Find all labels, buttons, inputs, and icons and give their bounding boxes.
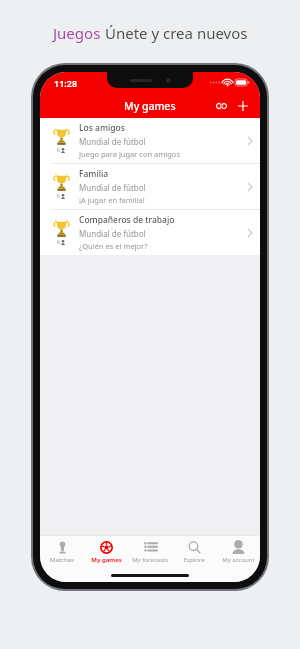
staticText: Mundial de fútbol bbox=[79, 136, 146, 147]
staticText: 11:28 bbox=[54, 77, 78, 89]
staticText: My games bbox=[124, 99, 176, 113]
button[interactable]: My games bbox=[84, 536, 128, 569]
staticText: 6 bbox=[57, 193, 60, 200]
staticText: Matches bbox=[50, 556, 74, 564]
button[interactable]: 6 bbox=[40, 210, 260, 255]
staticText: Familia bbox=[79, 168, 109, 180]
button[interactable]: 6 bbox=[40, 118, 260, 164]
staticText: Explore bbox=[183, 556, 205, 564]
staticText: 6 bbox=[57, 147, 60, 154]
staticText: 6 bbox=[57, 239, 60, 246]
staticText: My forecasts bbox=[132, 556, 168, 564]
staticText: My account bbox=[222, 556, 255, 564]
button[interactable]: My forecasts bbox=[128, 536, 172, 569]
button[interactable]: My account bbox=[216, 536, 260, 569]
button[interactable]: Explore bbox=[172, 536, 216, 569]
staticText: Compañeros de trabajo bbox=[79, 214, 175, 226]
staticText: ¡A jugar en familia! bbox=[79, 195, 145, 205]
staticText: Mundial de fútbol bbox=[79, 228, 146, 239]
button[interactable]: Join with link bbox=[210, 95, 232, 117]
staticText: My games bbox=[91, 556, 122, 564]
staticText: Juego para jugar con amigos bbox=[79, 149, 180, 159]
staticText: Los amigos bbox=[79, 122, 125, 134]
staticText: Mundial de fútbol bbox=[79, 182, 146, 193]
staticText: ¿Quién es el mejor? bbox=[79, 241, 148, 251]
button[interactable]: Create game bbox=[232, 95, 254, 117]
button[interactable]: 6 bbox=[40, 164, 260, 210]
staticText: Únete y crea nuevos bbox=[105, 23, 248, 43]
button[interactable]: Matches bbox=[40, 536, 84, 569]
staticText: Juegos bbox=[53, 23, 105, 43]
